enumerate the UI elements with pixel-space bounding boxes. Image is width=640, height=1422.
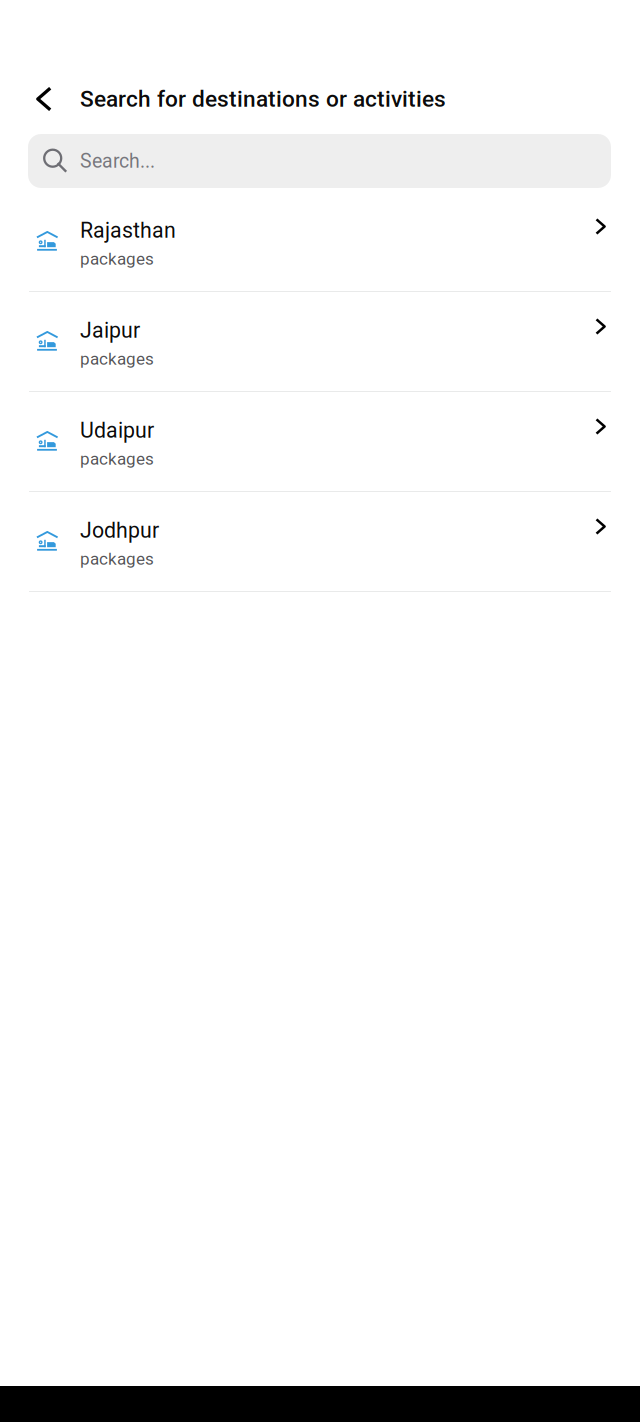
staticText: Udaipur — [80, 418, 154, 443]
staticText: Jodhpur — [80, 518, 159, 543]
staticText: packages — [80, 449, 154, 469]
staticText: Search for destinations or activities — [80, 86, 446, 112]
staticText: Jaipur — [80, 318, 140, 343]
staticText: packages — [80, 549, 154, 569]
button[interactable]: Rajasthan — [0, 192, 640, 292]
staticText: Rajasthan — [80, 218, 176, 243]
staticText: Search... — [80, 150, 155, 172]
button[interactable]: Jaipur — [0, 292, 640, 392]
staticText: packages — [80, 249, 154, 269]
staticText: packages — [80, 349, 154, 369]
button[interactable]: Back — [21, 76, 67, 122]
button[interactable]: Search... — [28, 134, 611, 188]
button[interactable]: Jodhpur — [0, 492, 640, 592]
button[interactable]: Udaipur — [0, 392, 640, 492]
